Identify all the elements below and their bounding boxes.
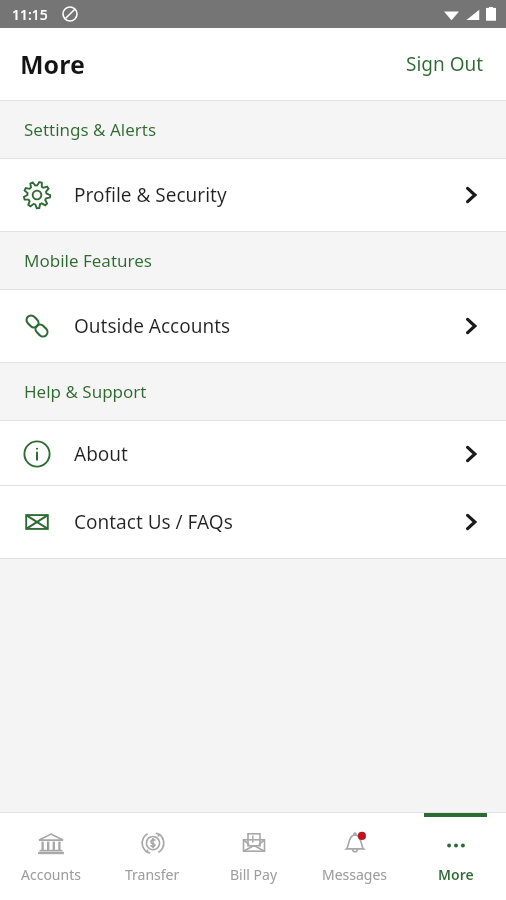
staticText: Messages xyxy=(322,865,388,884)
staticText: Contact Us / FAQs xyxy=(74,509,233,535)
button[interactable]: Sign Out xyxy=(384,39,506,89)
staticText: Accounts xyxy=(21,865,81,884)
button[interactable]: About xyxy=(0,421,506,486)
button[interactable]: Transfer xyxy=(102,813,203,900)
staticText: Profile & Security xyxy=(74,182,227,208)
staticText: Mobile Features xyxy=(24,249,152,272)
staticText: Transfer xyxy=(125,865,180,884)
staticText: Outside Accounts xyxy=(74,313,231,339)
staticText: Help & Support xyxy=(24,380,147,403)
staticText: Settings & Alerts xyxy=(24,118,157,141)
staticText: Bill Pay xyxy=(230,865,278,884)
staticText: More xyxy=(438,865,474,884)
button[interactable]: More xyxy=(405,813,506,900)
button[interactable]: Outside Accounts xyxy=(0,290,506,362)
staticText: 11:15 xyxy=(12,5,48,24)
button[interactable]: Accounts xyxy=(0,813,102,900)
button[interactable]: Contact Us / FAQs xyxy=(0,486,506,558)
staticText: About xyxy=(74,441,128,467)
button[interactable]: Profile & Security xyxy=(0,159,506,231)
button[interactable]: Messages xyxy=(304,813,405,900)
staticText: More xyxy=(20,47,85,81)
button[interactable]: Bill Pay xyxy=(203,813,304,900)
staticText: Sign Out xyxy=(406,51,484,77)
